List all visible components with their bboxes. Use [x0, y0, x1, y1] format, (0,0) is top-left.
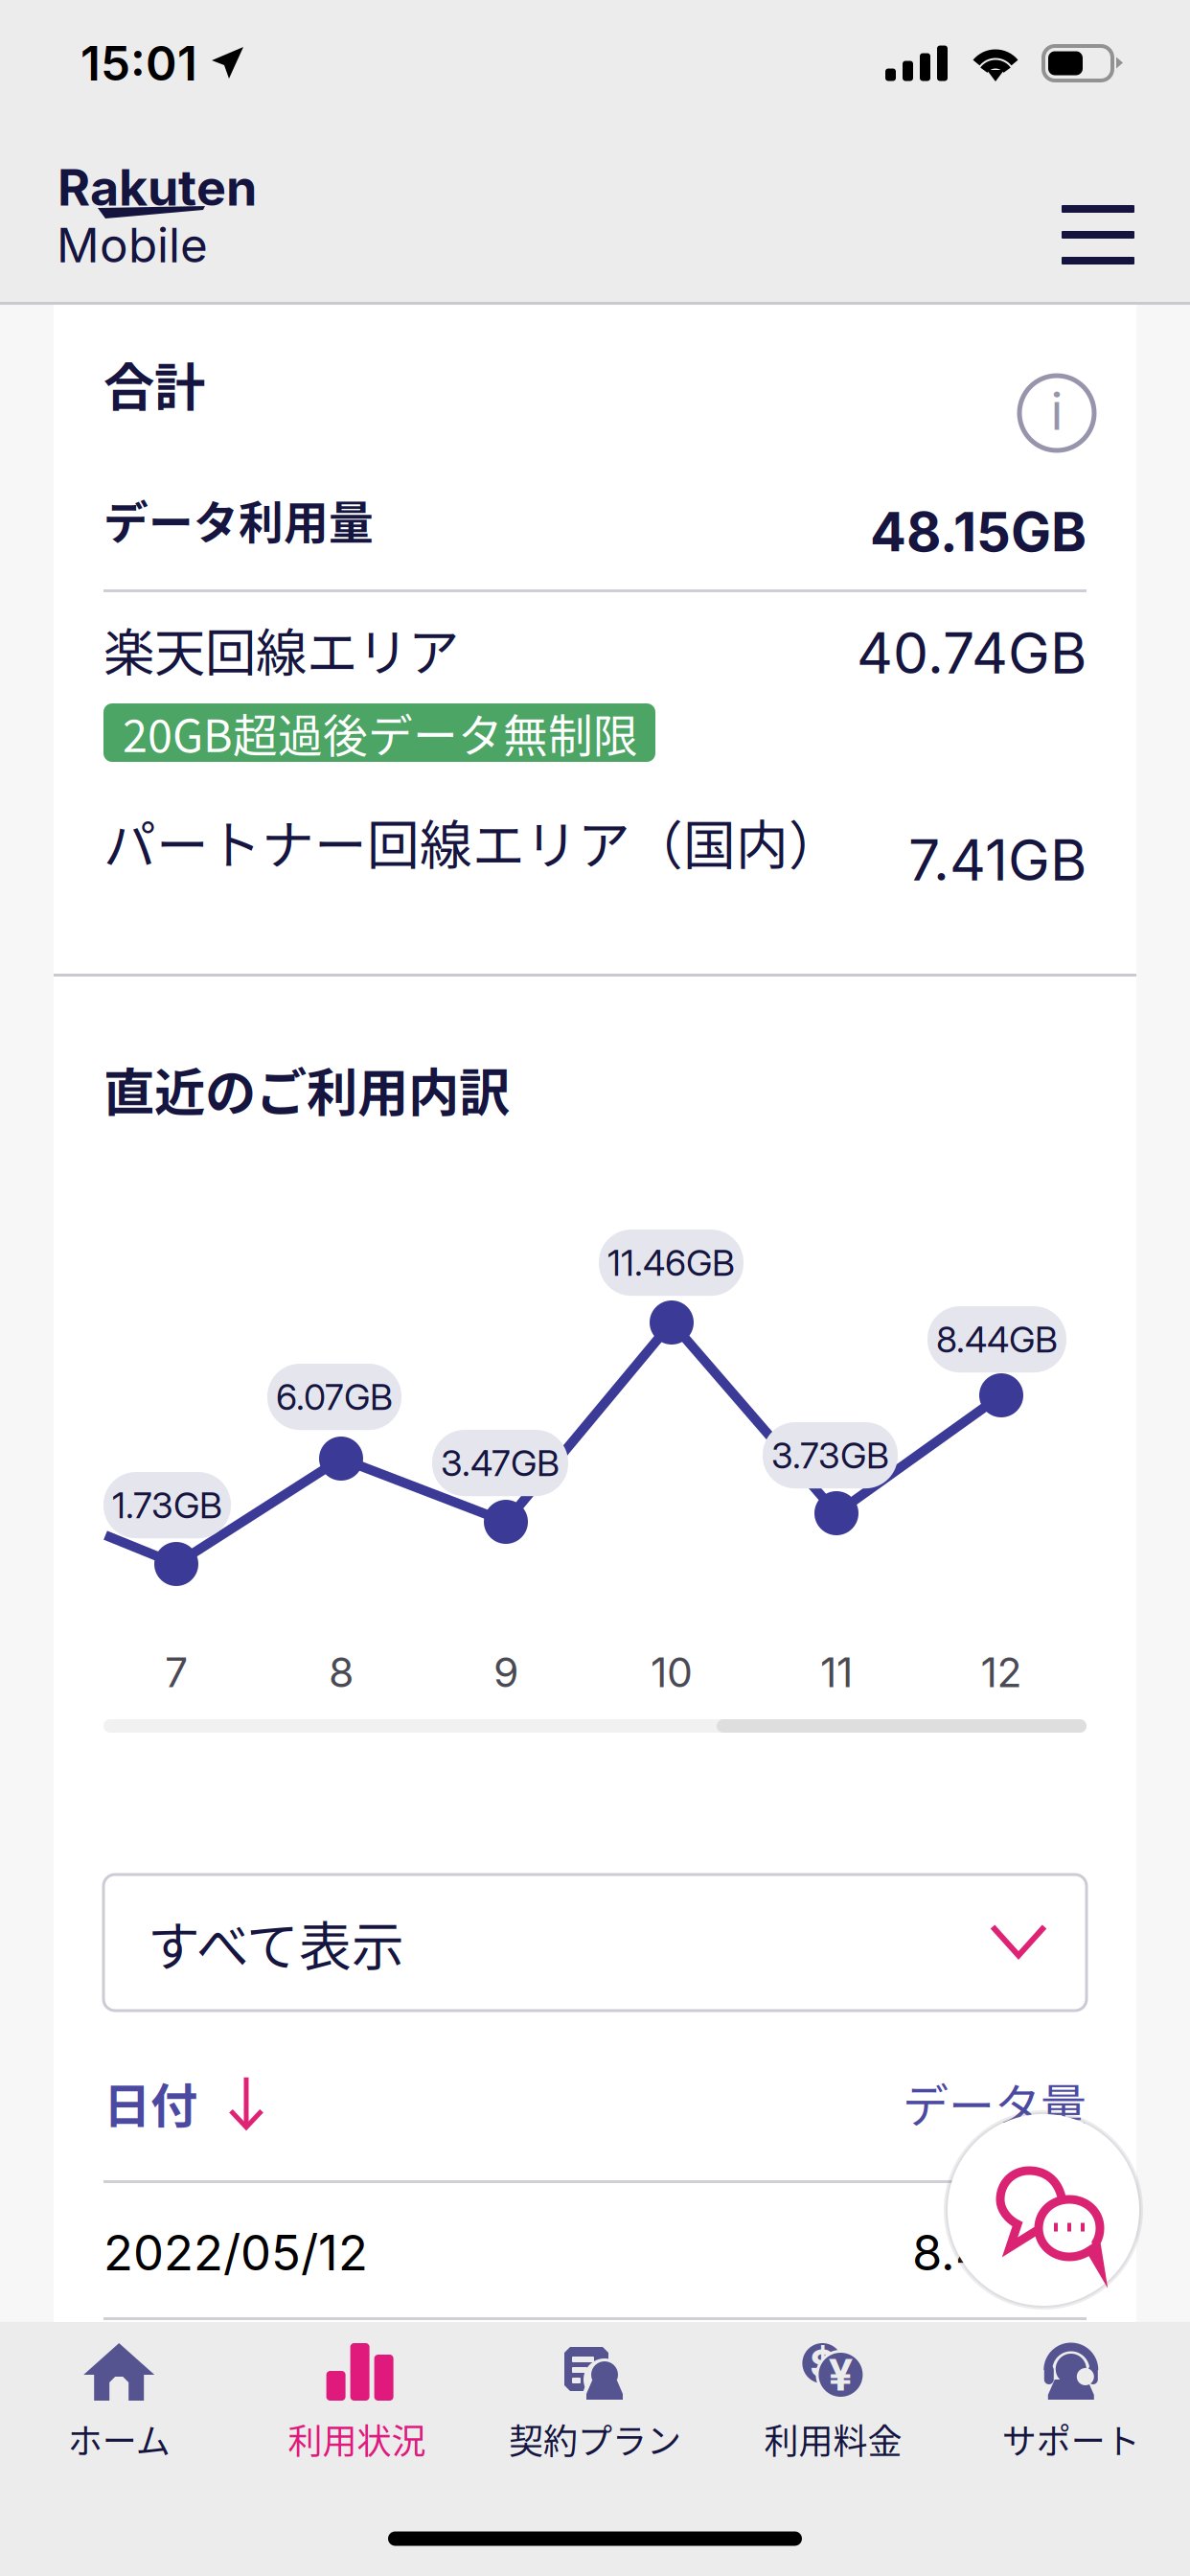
- staticText: 11.46GB: [607, 1241, 735, 1284]
- staticText: 利用料金: [764, 2414, 902, 2464]
- staticText: 11: [820, 1648, 853, 1697]
- staticText: 1.73GB: [112, 1483, 222, 1527]
- staticText: 直近のご利用内訳: [103, 1052, 510, 1126]
- staticText: 40.74GB: [857, 619, 1087, 687]
- staticText: 6.07GB: [276, 1375, 393, 1419]
- staticText: 合計: [103, 347, 205, 421]
- button[interactable]: 利用状況: [238, 2343, 476, 2477]
- staticText: 7: [165, 1648, 188, 1697]
- staticText: 3.47GB: [441, 1441, 560, 1485]
- staticText: 3.73GB: [771, 1434, 889, 1477]
- button[interactable]: サポート: [952, 2343, 1190, 2477]
- button[interactable]: Chat support: [944, 2110, 1143, 2310]
- staticText: サポート: [1002, 2414, 1140, 2464]
- staticText: 楽天回線エリア: [103, 612, 459, 686]
- button[interactable]: データ量: [903, 2069, 1087, 2136]
- staticText: ¥: [828, 2348, 853, 2401]
- staticText: 8: [329, 1648, 354, 1697]
- staticText: 8.44GB: [912, 2223, 1087, 2282]
- staticText: 利用状況: [288, 2414, 426, 2464]
- staticText: Mobile: [57, 217, 208, 274]
- button[interactable]: 契約プラン: [476, 2343, 714, 2477]
- staticText: 7.41GB: [908, 826, 1087, 894]
- staticText: 契約プラン: [509, 2414, 681, 2464]
- staticText: 20GB超過後データ無制限: [123, 700, 638, 765]
- button[interactable]: Menu: [1033, 172, 1163, 297]
- staticText: 10: [651, 1648, 693, 1697]
- staticText: 8.44GB: [936, 1318, 1058, 1361]
- button[interactable]: すべて表示: [103, 1874, 1087, 2011]
- staticText: 12: [981, 1648, 1022, 1697]
- staticText: 15:01: [80, 35, 197, 92]
- staticText: 2022/05/12: [103, 2223, 368, 2282]
- staticText: Rakuten: [57, 157, 257, 217]
- staticText: 9: [493, 1648, 518, 1697]
- staticText: データ利用量: [103, 487, 374, 552]
- button[interactable]: $: [714, 2343, 952, 2477]
- button[interactable]: 日付: [103, 2068, 267, 2137]
- button[interactable]: About total data usage: [1013, 369, 1101, 457]
- staticText: データ量: [903, 2069, 1087, 2136]
- staticText: パートナー回線エリア（国内）: [103, 803, 841, 879]
- staticText: すべて表示: [148, 1905, 404, 1980]
- staticText: $: [810, 2340, 835, 2386]
- staticText: 48.15GB: [870, 499, 1087, 564]
- staticText: 日付: [103, 2068, 197, 2137]
- button[interactable]: ホーム: [0, 2343, 238, 2477]
- staticText: i: [1051, 380, 1063, 442]
- staticText: ホーム: [68, 2414, 170, 2464]
